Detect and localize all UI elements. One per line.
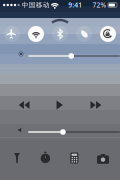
button[interactable]: Play	[46, 96, 74, 114]
staticText: 72%	[92, 1, 106, 9]
staticText: 中国移动	[22, 1, 50, 9]
staticText: 9:41	[68, 1, 82, 9]
button[interactable]: Rotation Lock	[100, 26, 116, 42]
button[interactable]: Bluetooth	[52, 26, 68, 42]
button[interactable]: Previous track	[10, 96, 38, 114]
button[interactable]: Airplane Mode	[4, 26, 20, 42]
button[interactable]: Wi-Fi	[28, 26, 44, 42]
button[interactable]: Calculator	[65, 149, 83, 167]
button[interactable]: Timer	[37, 149, 55, 167]
button[interactable]: Next track	[82, 96, 110, 114]
button[interactable]: Do Not Disturb	[76, 26, 92, 42]
button[interactable]: Flashlight	[8, 149, 26, 167]
button[interactable]: Camera	[94, 149, 112, 167]
